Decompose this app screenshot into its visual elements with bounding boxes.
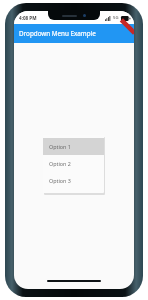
staticText: Option 1 bbox=[49, 143, 71, 150]
button[interactable]: Option 1 bbox=[43, 138, 104, 155]
other: Debug banner bbox=[112, 24, 134, 43]
button[interactable]: Option 3 bbox=[43, 172, 104, 189]
staticText: Dropdown Menu Example bbox=[19, 29, 96, 38]
button[interactable]: Option 2 bbox=[43, 155, 104, 172]
staticText: 5G bbox=[113, 15, 119, 21]
staticText: Option 2 bbox=[49, 160, 71, 167]
staticText: Option 3 bbox=[49, 177, 71, 184]
staticText: 4:08 PM bbox=[19, 15, 37, 21]
